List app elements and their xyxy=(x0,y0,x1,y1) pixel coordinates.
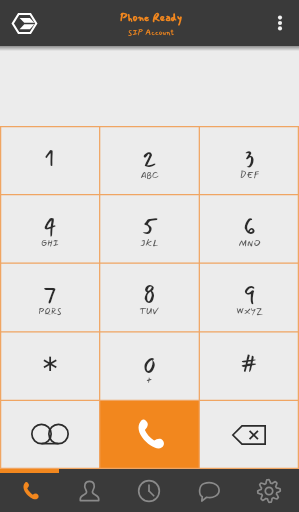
button[interactable]: # xyxy=(199,331,299,400)
staticText: 0 xyxy=(143,346,156,382)
staticText: 1 xyxy=(44,140,55,176)
staticText: PQRS xyxy=(38,305,62,318)
staticText: 6 xyxy=(243,208,256,244)
staticText: SIP Account xyxy=(128,26,175,39)
staticText: 3 xyxy=(244,140,255,176)
button[interactable]: Messages xyxy=(179,469,239,512)
button[interactable]: 1 xyxy=(0,126,99,194)
button[interactable]: Voicemail xyxy=(0,400,99,469)
button[interactable]: 4 xyxy=(0,194,99,262)
staticText: 7 xyxy=(42,277,57,313)
button[interactable]: ∗ xyxy=(0,331,99,400)
button[interactable]: 7 xyxy=(0,262,99,331)
button[interactable]: 9 xyxy=(199,262,299,331)
button[interactable]: Contacts xyxy=(59,469,119,512)
staticText: JKL xyxy=(140,237,158,250)
staticText: MNO xyxy=(238,237,261,250)
staticText: Phone Ready xyxy=(120,9,183,26)
button[interactable]: Call xyxy=(99,400,199,469)
button[interactable]: History xyxy=(119,469,179,512)
button[interactable]: 8 xyxy=(99,262,199,331)
staticText: 5 xyxy=(141,208,158,244)
button[interactable]: Open navigation menu xyxy=(6,5,42,41)
staticText: 9 xyxy=(243,277,256,313)
staticText: 8 xyxy=(143,277,156,313)
staticText: 2 xyxy=(142,140,157,176)
staticText: + xyxy=(146,374,152,387)
button[interactable]: Backspace xyxy=(199,400,299,469)
staticText: WXYZ xyxy=(236,305,263,318)
button[interactable]: 5 xyxy=(99,194,199,262)
staticText: ABC xyxy=(140,169,159,182)
button[interactable]: 2 xyxy=(99,126,199,194)
button[interactable]: Dialer xyxy=(0,469,59,512)
button[interactable]: 0 xyxy=(99,331,199,400)
staticText: ∗ xyxy=(40,350,60,377)
staticText: TUV xyxy=(139,305,159,318)
staticText: 4 xyxy=(43,208,57,244)
button[interactable]: 3 xyxy=(199,126,299,194)
staticText: # xyxy=(240,346,258,382)
button[interactable]: Settings xyxy=(239,469,299,512)
staticText: DEF xyxy=(240,169,259,182)
button[interactable]: More options xyxy=(267,10,293,36)
staticText: GHI xyxy=(41,237,59,250)
button[interactable]: 6 xyxy=(199,194,299,262)
